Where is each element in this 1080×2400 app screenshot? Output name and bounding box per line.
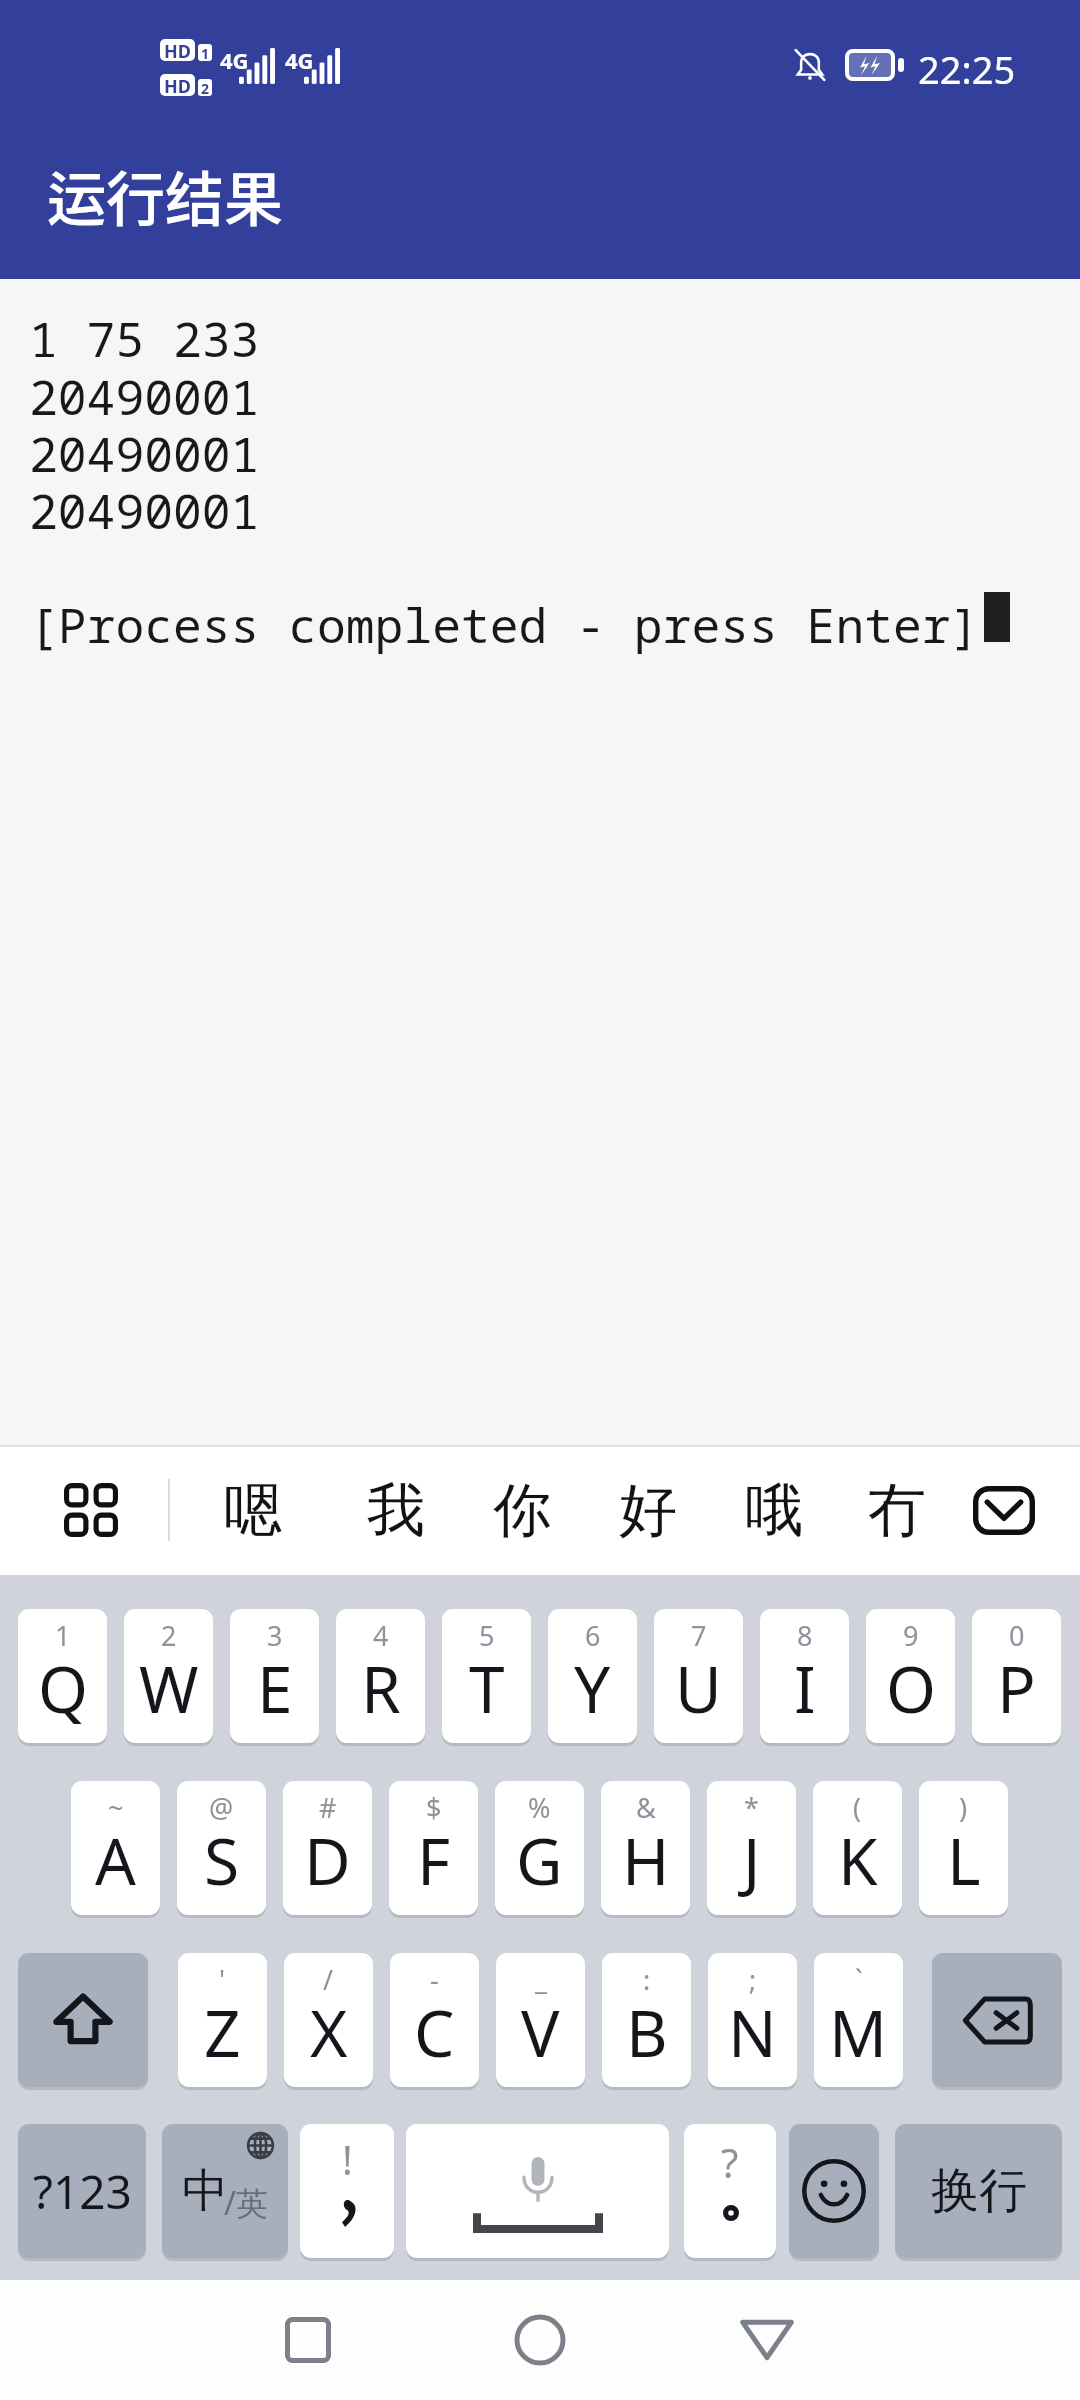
button[interactable]: 1	[18, 1609, 107, 1743]
staticText: L	[947, 1817, 981, 1904]
button[interactable]: 5	[442, 1609, 531, 1743]
staticText: 3	[267, 1617, 283, 1654]
button[interactable]: Keyboard tools	[64, 1483, 118, 1537]
button[interactable]: Shift	[18, 1953, 148, 2087]
staticText: B	[626, 1989, 668, 2076]
button[interactable]: Home	[495, 2295, 585, 2385]
button[interactable]: Hide keyboard	[973, 1486, 1035, 1535]
staticText: Z	[204, 1989, 241, 2076]
button[interactable]: Space	[406, 2124, 669, 2258]
staticText: 1	[55, 1617, 71, 1654]
staticText: )	[959, 1789, 968, 1826]
button[interactable]: #	[283, 1781, 372, 1915]
staticText: 4	[373, 1617, 389, 1654]
button[interactable]: Backspace	[932, 1953, 1062, 2087]
button[interactable]: 你	[463, 1445, 581, 1575]
button[interactable]: 我	[337, 1445, 455, 1575]
button[interactable]: Back	[722, 2295, 812, 2385]
button[interactable]: 好	[589, 1445, 707, 1575]
staticText: Q	[38, 1645, 88, 1732]
button[interactable]: %	[495, 1781, 584, 1915]
staticText: 冇	[868, 1474, 926, 1547]
staticText: A	[95, 1817, 136, 1904]
staticText: G	[516, 1817, 563, 1904]
staticText: P	[997, 1645, 1036, 1732]
staticText: !	[342, 2132, 353, 2186]
staticText: _	[535, 1961, 547, 1998]
button[interactable]: 冇	[838, 1445, 956, 1575]
button[interactable]: @	[177, 1781, 266, 1915]
button[interactable]: :	[602, 1953, 691, 2087]
staticText: 5	[479, 1617, 495, 1654]
staticText: 9	[903, 1617, 919, 1654]
button[interactable]: 8	[760, 1609, 849, 1743]
staticText: %	[528, 1789, 551, 1826]
button[interactable]: ?123	[18, 2124, 146, 2258]
staticText: 中	[182, 2162, 228, 2220]
staticText: :	[643, 1961, 651, 1998]
staticText: HD	[164, 39, 191, 61]
staticText: N	[728, 1989, 777, 2076]
button[interactable]: Period	[684, 2124, 776, 2258]
staticText: E	[257, 1645, 293, 1732]
button[interactable]: 换行	[895, 2124, 1062, 2258]
staticText: 4G	[220, 45, 249, 75]
staticText: 0	[1009, 1617, 1025, 1654]
button[interactable]: ~	[71, 1781, 160, 1915]
staticText: $	[426, 1789, 442, 1826]
staticText: K	[838, 1817, 878, 1904]
staticText: &	[636, 1789, 656, 1826]
staticText: 4G	[285, 45, 314, 75]
button[interactable]: ;	[708, 1953, 797, 2087]
staticText: F	[417, 1817, 451, 1904]
staticText: 嗯	[224, 1474, 282, 1547]
button[interactable]: `	[814, 1953, 903, 2087]
button[interactable]: Recents	[263, 2295, 353, 2385]
button[interactable]: 哦	[715, 1445, 833, 1575]
staticText: -	[430, 1961, 439, 1998]
staticText: ?123	[33, 2160, 132, 2223]
button[interactable]: 2	[124, 1609, 213, 1743]
staticText: 1	[201, 44, 210, 61]
staticText: V	[521, 1989, 560, 2076]
staticText: ;	[749, 1961, 757, 1998]
staticText: R	[361, 1645, 401, 1732]
button[interactable]: (	[813, 1781, 902, 1915]
button[interactable]: _	[496, 1953, 585, 2087]
staticText: 2	[201, 79, 210, 96]
button[interactable]: *	[707, 1781, 796, 1915]
staticText: O	[886, 1645, 936, 1732]
staticText: 1 75 233 20490001 20490001 20490001 [Pro…	[29, 306, 980, 657]
button[interactable]: 4	[336, 1609, 425, 1743]
button[interactable]: &	[601, 1781, 690, 1915]
staticText: 2	[161, 1617, 177, 1654]
button[interactable]: '	[178, 1953, 267, 2087]
button[interactable]: Comma	[300, 2124, 394, 2258]
button[interactable]: 7	[654, 1609, 743, 1743]
staticText: J	[743, 1817, 761, 1904]
staticText: HD	[164, 74, 191, 96]
button[interactable]: Switch input language	[162, 2124, 288, 2258]
button[interactable]: 0	[972, 1609, 1061, 1743]
staticText: 好	[619, 1474, 677, 1547]
button[interactable]: 嗯	[194, 1445, 312, 1575]
button[interactable]: $	[389, 1781, 478, 1915]
button[interactable]: 3	[230, 1609, 319, 1743]
button[interactable]: -	[390, 1953, 479, 2087]
button[interactable]: Emoji	[789, 2124, 879, 2258]
button[interactable]: 6	[548, 1609, 637, 1743]
staticText: `	[855, 1961, 863, 1998]
staticText: (	[853, 1789, 862, 1826]
staticText: 哦	[745, 1474, 803, 1547]
staticText: S	[204, 1817, 240, 1904]
staticText: M	[829, 1989, 888, 2076]
staticText: H	[622, 1817, 670, 1904]
staticText: W	[139, 1645, 199, 1732]
staticText: T	[469, 1645, 505, 1732]
staticText: C	[414, 1989, 455, 2076]
staticText: @	[209, 1789, 234, 1826]
staticText: X	[310, 1989, 348, 2076]
button[interactable]: 9	[866, 1609, 955, 1743]
button[interactable]: /	[284, 1953, 373, 2087]
button[interactable]: )	[919, 1781, 1008, 1915]
